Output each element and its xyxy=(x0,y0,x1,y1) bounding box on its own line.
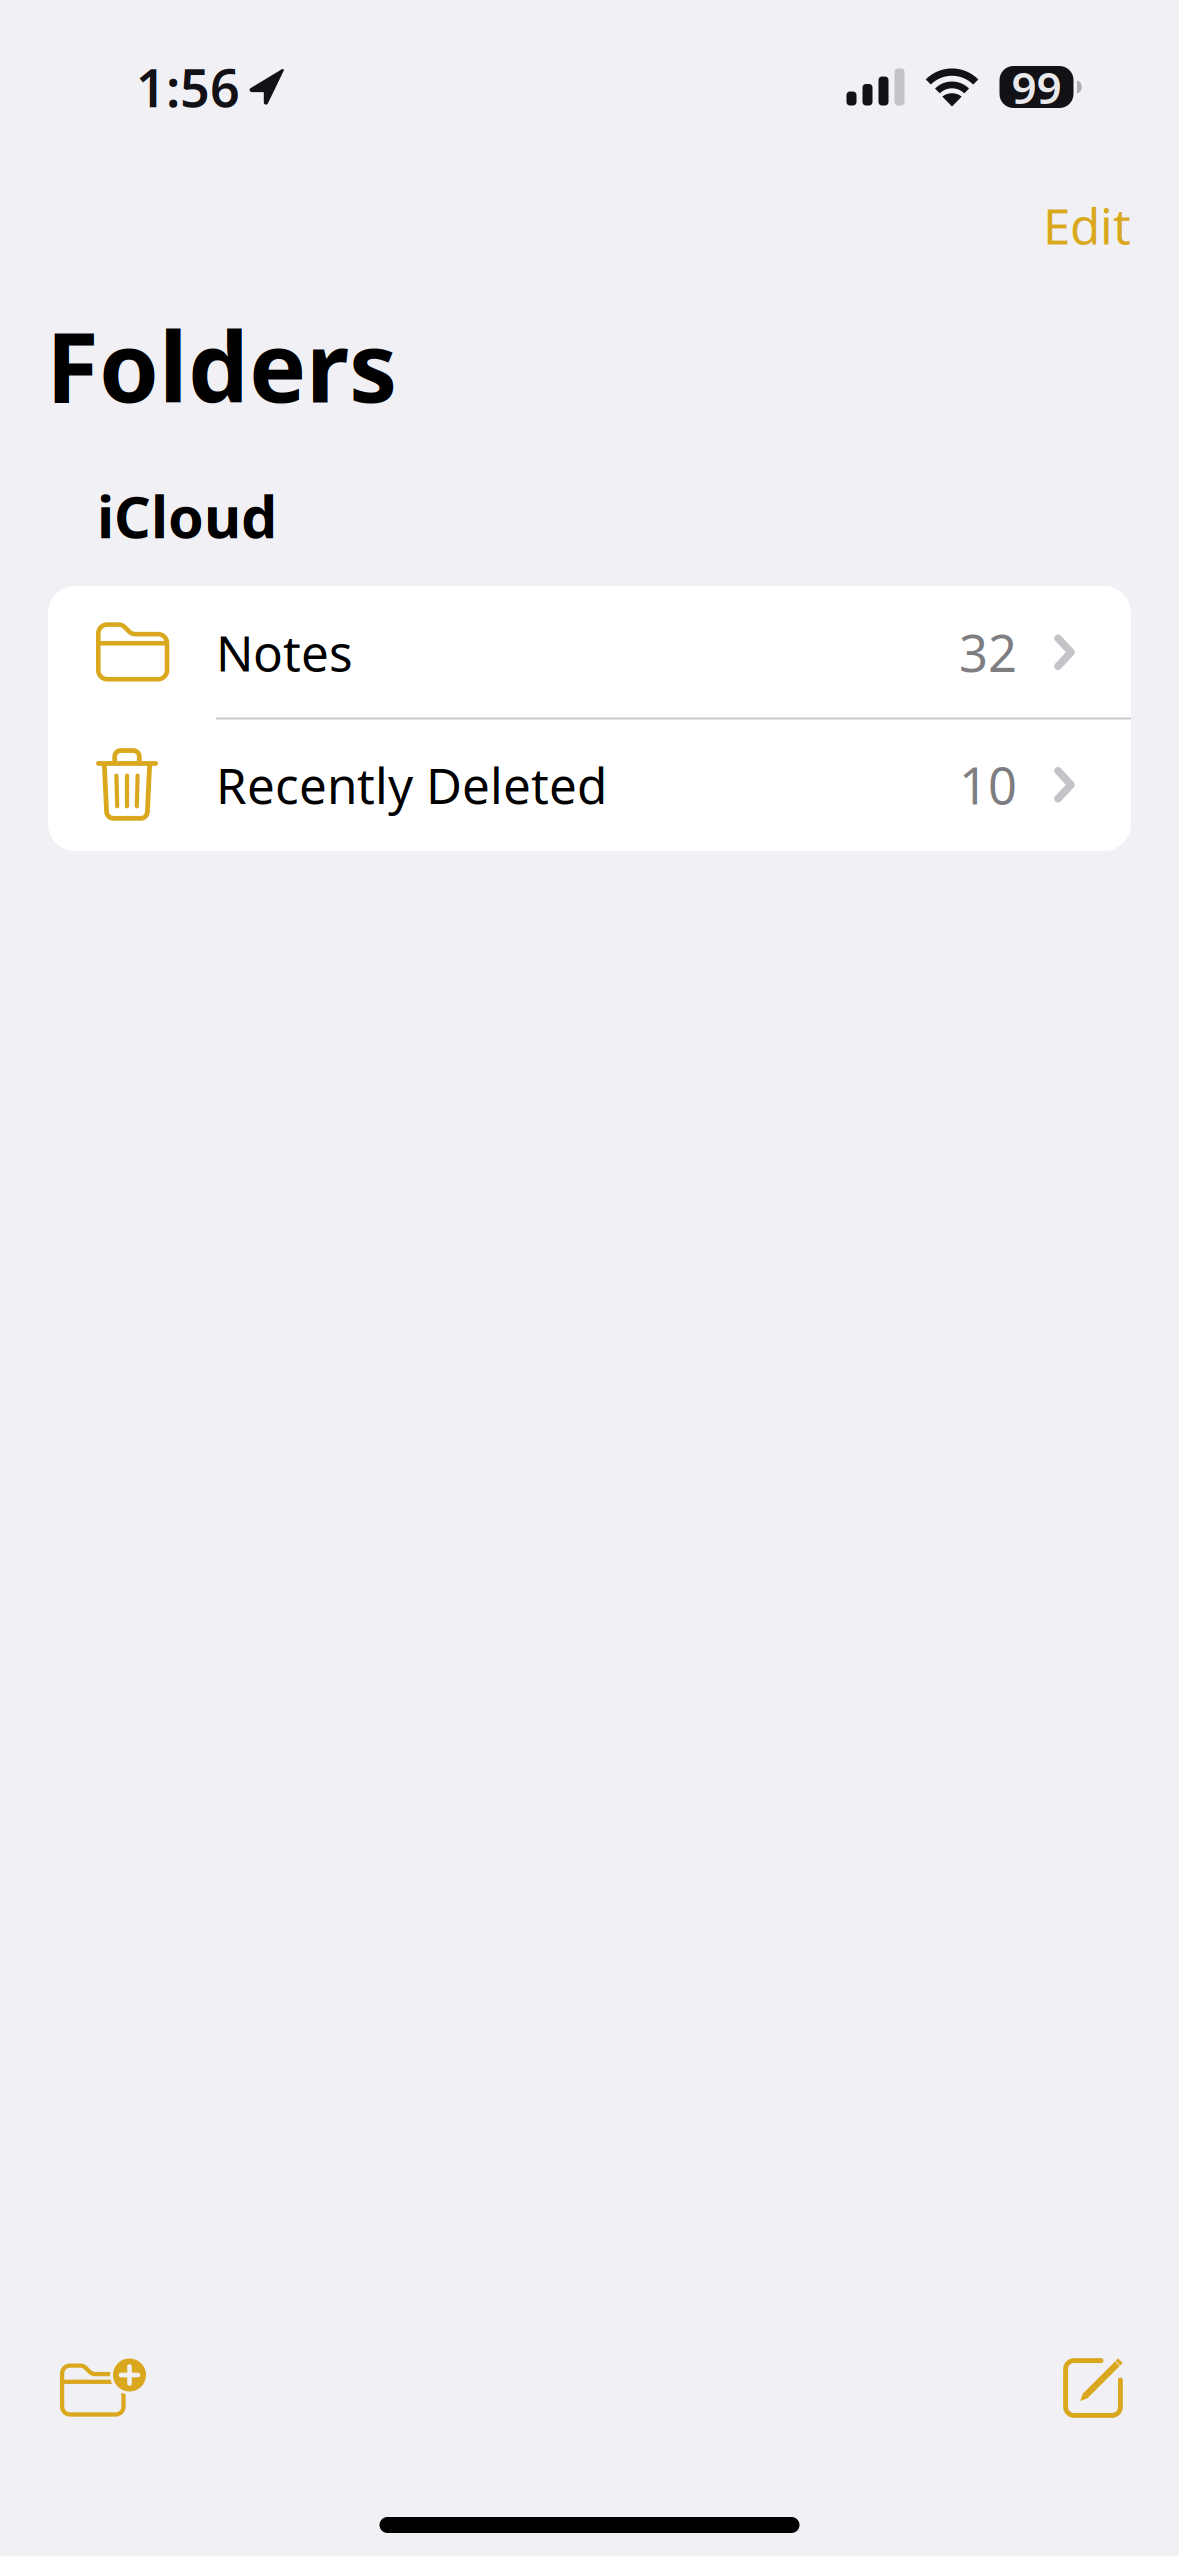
staticText: Recently Deleted xyxy=(216,752,607,817)
button[interactable]: Edit xyxy=(1019,174,1155,276)
staticText: 1:56 xyxy=(136,52,240,122)
staticText: 10 xyxy=(959,751,1017,818)
staticText: 32 xyxy=(959,619,1017,686)
staticText: iCloud xyxy=(97,478,277,554)
button[interactable]: Recently Deleted xyxy=(48,718,1131,851)
staticText: Folders xyxy=(46,301,397,429)
staticText: 99 xyxy=(1011,58,1061,116)
button[interactable]: Notes xyxy=(48,586,1131,718)
staticText: Edit xyxy=(1043,192,1131,258)
button[interactable]: New Folder xyxy=(38,2333,169,2442)
button[interactable]: New Note xyxy=(1041,2334,1146,2442)
staticText: Notes xyxy=(216,619,353,685)
